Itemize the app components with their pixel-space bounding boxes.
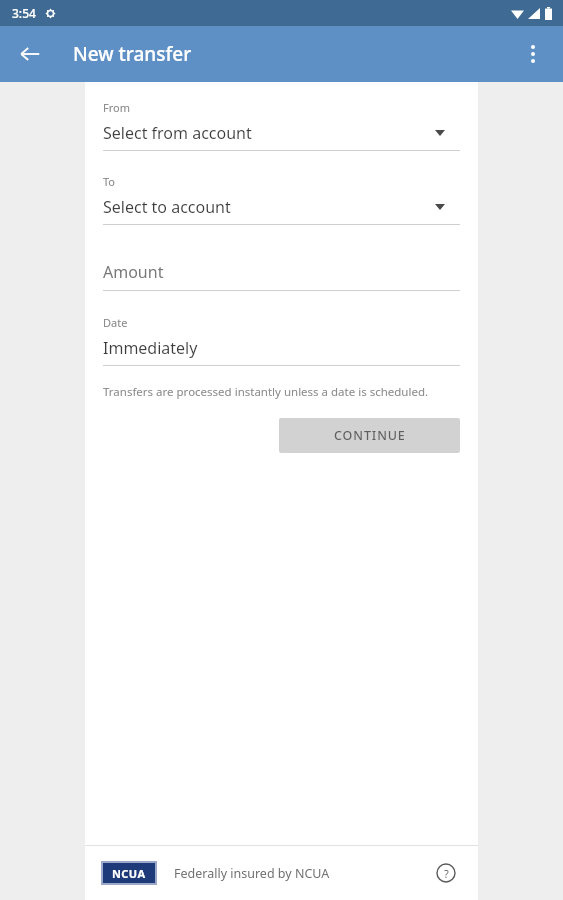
button[interactable]: From xyxy=(103,100,460,151)
staticText: NCUA xyxy=(112,866,146,881)
staticText: 3:54 xyxy=(12,5,36,21)
staticText: From xyxy=(103,100,130,115)
staticText: ? xyxy=(444,866,449,881)
staticText: New transfer xyxy=(73,41,192,67)
button[interactable]: CONTINUE xyxy=(279,418,460,453)
button[interactable]: More options xyxy=(509,30,557,78)
staticText: Select to account xyxy=(103,196,231,218)
button[interactable]: Back xyxy=(6,30,54,78)
button[interactable]: Help xyxy=(428,855,464,891)
staticText: To xyxy=(103,174,116,189)
button[interactable]: Date xyxy=(103,315,460,366)
button[interactable]: To xyxy=(103,174,460,225)
staticText: CONTINUE xyxy=(334,427,406,444)
staticText: Amount xyxy=(103,261,164,283)
staticText: Select from account xyxy=(103,122,252,144)
staticText: Date xyxy=(103,315,128,330)
button[interactable]: Amount xyxy=(103,261,460,291)
staticText: Immediately xyxy=(103,337,198,359)
staticText: Transfers are processed instantly unless… xyxy=(103,384,429,400)
staticText: Federally insured by NCUA xyxy=(174,865,330,882)
